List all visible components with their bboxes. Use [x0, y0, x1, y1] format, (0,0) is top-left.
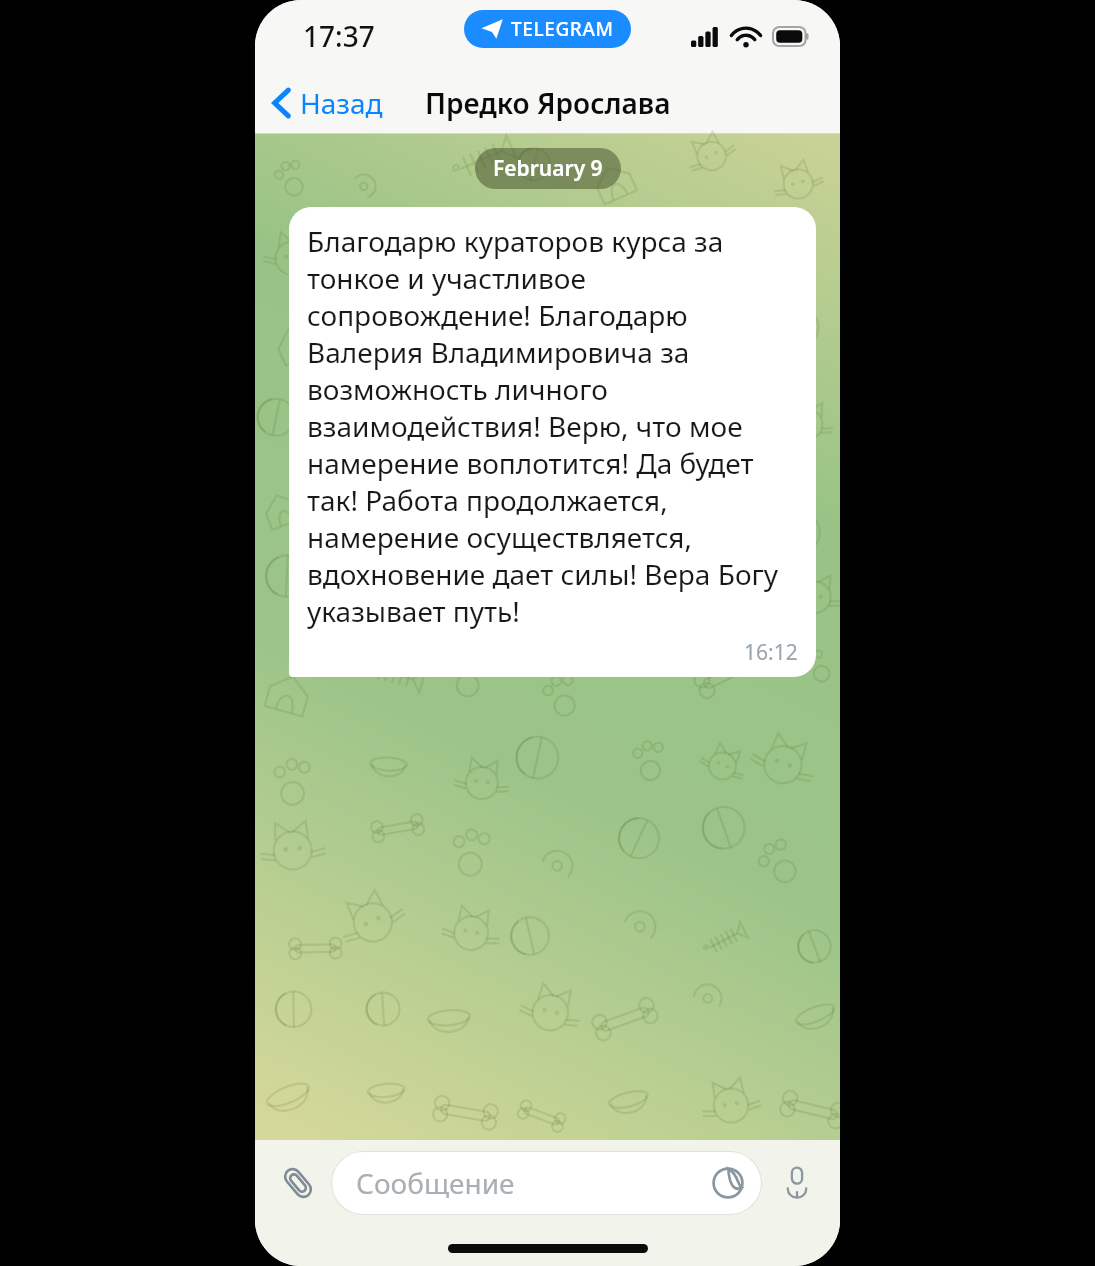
button[interactable]: Attach file: [271, 1156, 325, 1210]
staticText: Сообщение: [356, 1164, 515, 1202]
button[interactable]: TELEGRAM: [464, 10, 631, 48]
button[interactable]: Stickers: [706, 1161, 750, 1205]
staticText: Благодарю кураторов курса за тонкое и уч…: [307, 222, 798, 631]
staticText: TELEGRAM: [511, 16, 614, 42]
staticText: 16:12: [744, 638, 798, 667]
button[interactable]: Сообщение: [331, 1151, 762, 1215]
button[interactable]: Благодарю кураторов курса за тонкое и уч…: [289, 207, 816, 677]
staticText: Назад: [300, 84, 383, 122]
button[interactable]: February 9: [475, 148, 621, 189]
staticText: February 9: [493, 154, 603, 183]
button[interactable]: Назад: [255, 78, 395, 128]
button[interactable]: Record voice message: [770, 1156, 824, 1210]
staticText: Предко Ярослава: [425, 84, 671, 122]
staticText: 17:37: [303, 17, 375, 55]
